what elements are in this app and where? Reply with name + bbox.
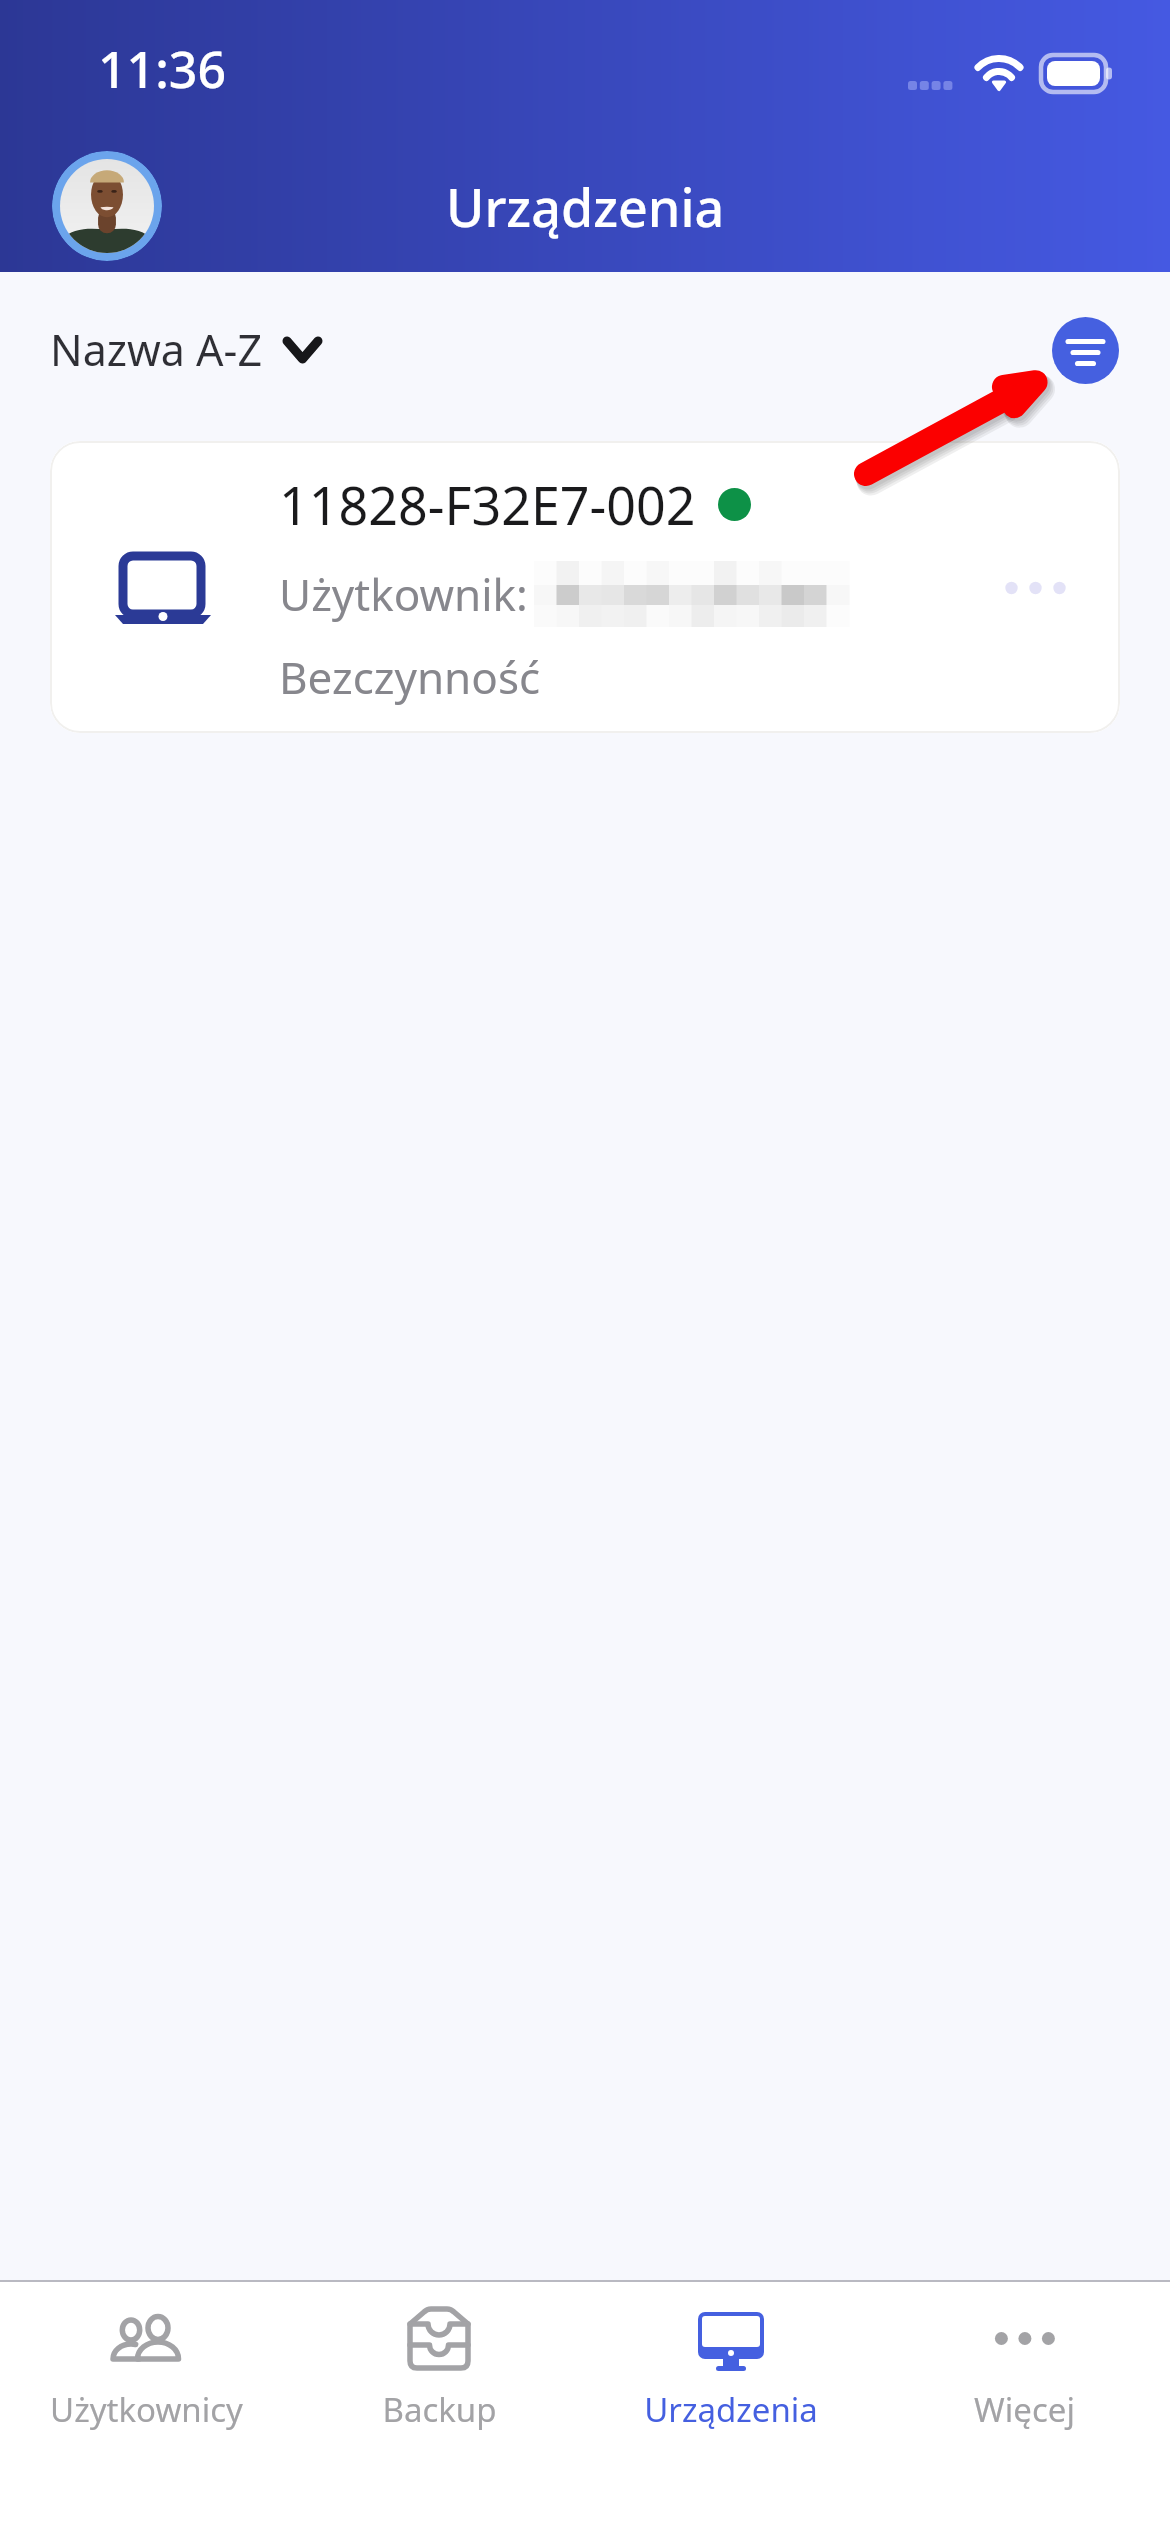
button[interactable]: Więcej <box>878 2282 1170 2532</box>
button[interactable]: Backup <box>293 2282 585 2532</box>
staticText: 11:36 <box>98 35 226 103</box>
staticText: Użytkownik: <box>279 564 528 624</box>
staticText: Bezczynność <box>279 647 541 707</box>
button[interactable]: Filtruj <box>1052 317 1119 384</box>
staticText: 11828-F32E7-002 <box>279 469 696 540</box>
button[interactable]: Więcej opcji <box>950 441 1120 733</box>
button[interactable]: Profil <box>52 151 162 261</box>
staticText: Więcej <box>974 2387 1075 2432</box>
staticText: Użytkownicy <box>50 2387 243 2432</box>
staticText: Urządzenia <box>644 2387 818 2432</box>
button[interactable]: Nazwa A-Z <box>35 308 337 391</box>
staticText: Urządzenia <box>446 171 725 242</box>
button[interactable]: 11828-F32E7-002 <box>50 441 1120 733</box>
staticText: Nazwa A-Z <box>50 320 263 379</box>
button[interactable]: Użytkownicy <box>0 2282 292 2532</box>
staticText: Backup <box>382 2387 497 2432</box>
button[interactable]: Urządzenia <box>585 2282 877 2532</box>
